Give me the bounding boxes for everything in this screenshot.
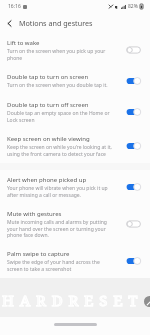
button[interactable]: Enabled [126,257,141,265]
staticText: Turn on the screen when you double tap i… [7,82,108,89]
button[interactable]: Enabled [126,108,141,116]
staticText: Palm swipe to capture [7,250,70,258]
staticText: 82% [128,3,138,10]
button[interactable]: Disabled [126,46,141,54]
staticText: Double tap to turn on screen [7,73,89,81]
staticText: Double tap to turn off screen [7,101,89,109]
button[interactable]: Disabled [126,220,141,228]
button[interactable]: Mute with gestures [0,204,150,244]
staticText: Swipe the edge of your hand across the s… [7,259,113,272]
staticText: 16:16 [8,3,21,10]
button[interactable]: Enabled [126,183,141,191]
staticText: Turn on the screen when you pick up your… [7,48,113,61]
staticText: Mute with gestures [7,210,62,218]
staticText: Double tap an empty space on the Home or… [7,110,113,123]
button[interactable]: Keep screen on while viewing [0,129,150,163]
button[interactable]: Lift to wake [0,33,150,67]
staticText: Lift to wake [7,39,40,47]
staticText: Keep screen on while viewing [7,135,90,143]
button[interactable]: Enabled [126,77,141,85]
staticText: Keep the screen on while you're looking … [7,144,113,157]
staticText: Alert when phone picked up [7,176,87,184]
staticText: Motions and gestures [19,18,93,28]
button[interactable]: Alert when phone picked up [0,170,150,204]
button[interactable]: Double tap to turn off screen [0,95,150,129]
button[interactable]: Palm swipe to capture [0,244,150,278]
staticText: Your phone will vibrate when you pick it… [7,185,113,198]
button[interactable]: Double tap to turn on screen [0,67,150,95]
button[interactable]: Navigate up [0,14,19,33]
button[interactable]: Enabled [126,142,141,150]
staticText: Mute incoming calls and alarms by puttin… [7,219,113,238]
staticText: HARDRESET [2,290,144,310]
